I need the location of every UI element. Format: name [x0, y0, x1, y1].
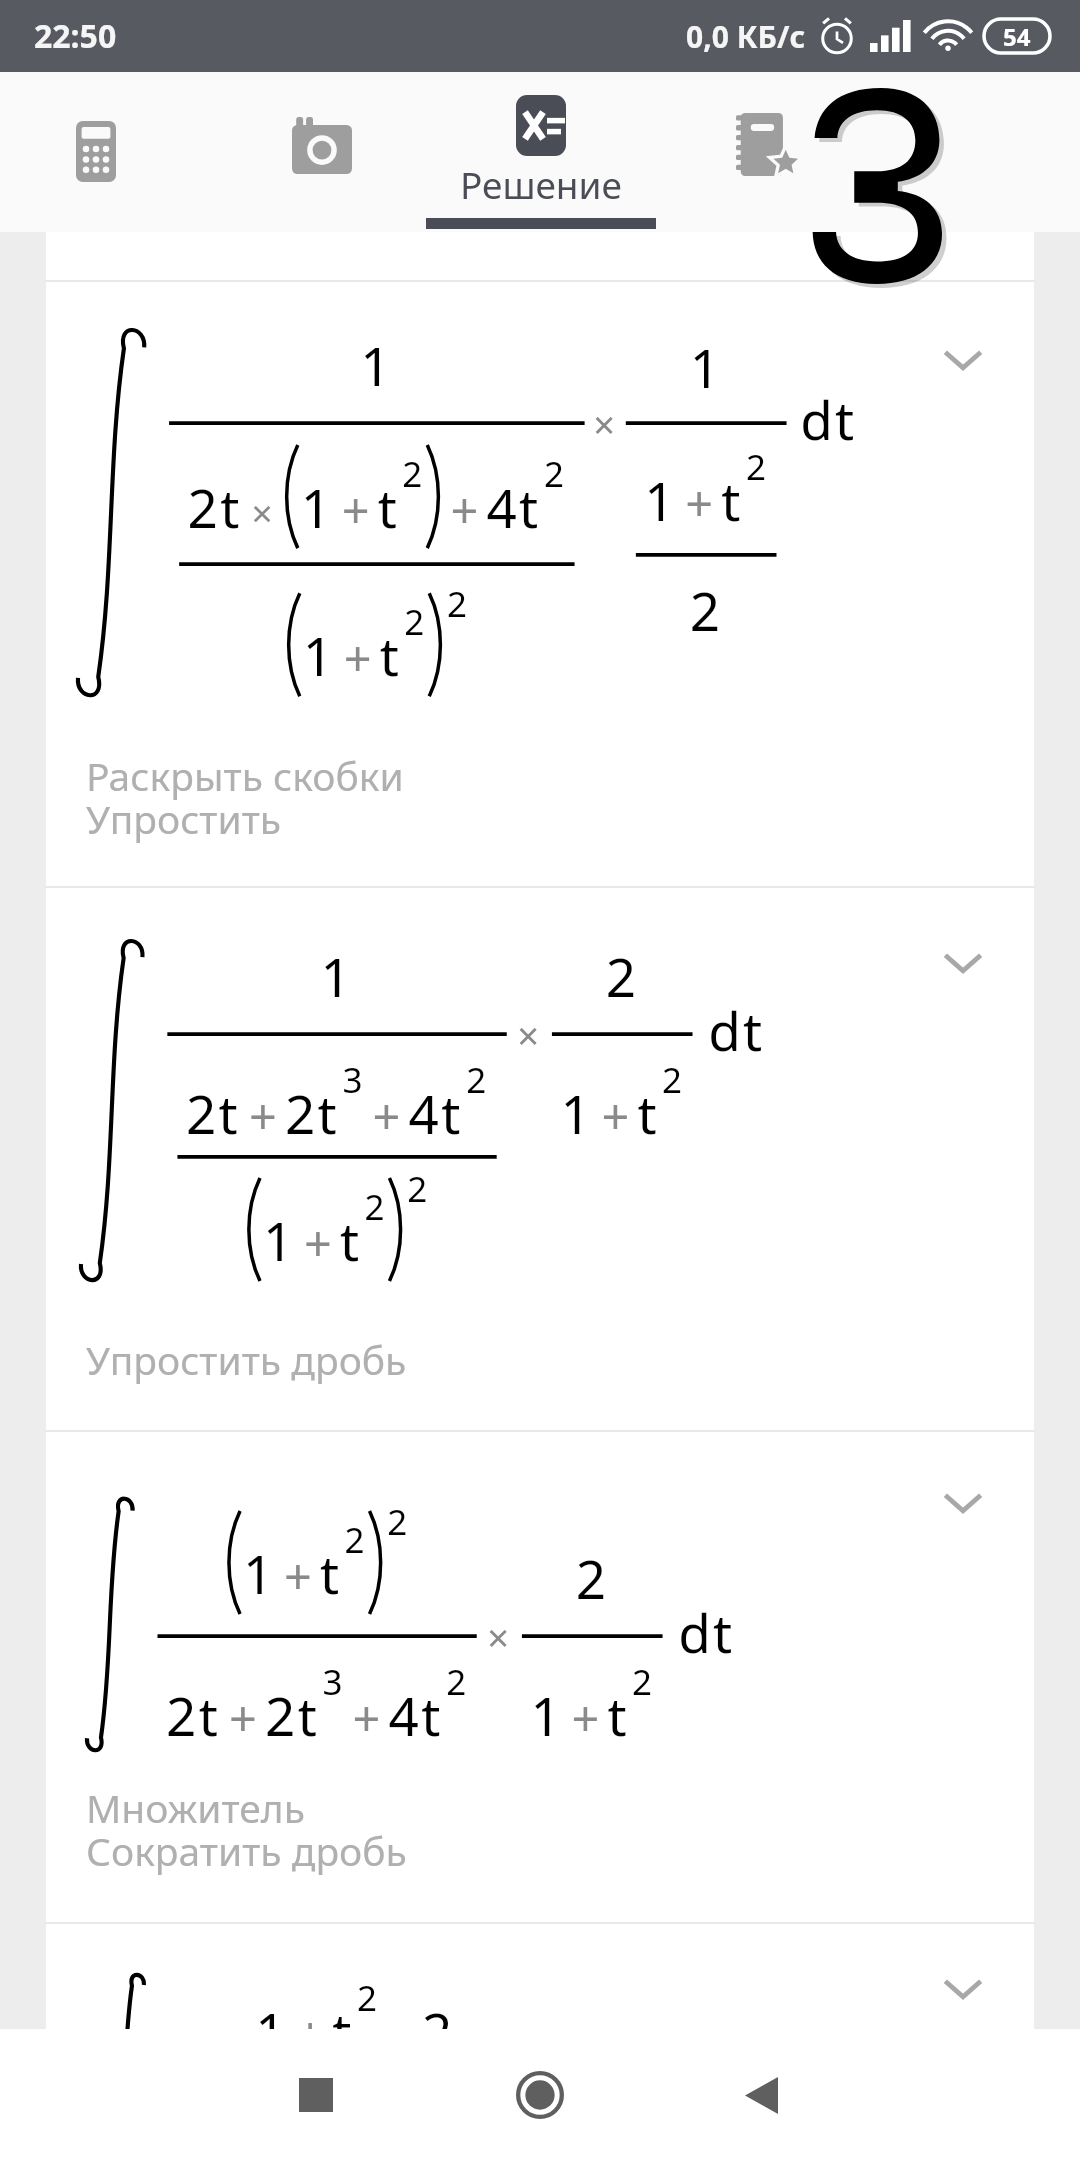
staticText: Раскрыть скобки Упростить	[86, 749, 404, 845]
button[interactable]: Множитель Сократить дробь	[46, 1432, 1034, 1922]
button[interactable]: Калькулятор	[0, 72, 208, 230]
button[interactable]: Решение	[426, 72, 656, 232]
button[interactable]: Раскрыть скобки Упростить	[46, 282, 1034, 886]
staticText: 0,0 КБ/с	[686, 16, 806, 57]
button[interactable]: Back	[725, 2059, 797, 2131]
staticText: 54	[1003, 20, 1031, 53]
staticText: Решение	[460, 159, 622, 209]
button[interactable]: Камера	[208, 72, 434, 230]
button[interactable]	[46, 1924, 1034, 2029]
staticText: 22:50	[34, 14, 117, 58]
staticText: Множитель Сократить дробь	[86, 1781, 407, 1877]
button[interactable]: Recents	[280, 2059, 352, 2131]
button[interactable]: Home	[504, 2059, 576, 2131]
button[interactable]: Упростить дробь	[46, 888, 1034, 1430]
button[interactable]: Избранное	[660, 72, 886, 230]
staticText: Упростить дробь	[86, 1333, 407, 1386]
